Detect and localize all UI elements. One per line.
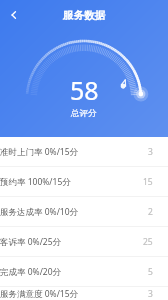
- button[interactable]: 服务满意度 0%/15分: [0, 287, 168, 300]
- staticText: 完成率 0%/20分: [0, 266, 148, 278]
- staticText: 客诉率 0%/25分: [0, 236, 143, 248]
- staticText: 3: [148, 288, 153, 300]
- staticText: 15: [143, 176, 153, 188]
- staticText: 预约率 100%/15分: [0, 176, 143, 188]
- staticText: 3: [148, 146, 153, 158]
- staticText: 服务达成率 0%/10分: [0, 206, 148, 218]
- button[interactable]: 准时上门率 0%/15分: [0, 137, 168, 166]
- button[interactable]: 预约率 100%/15分: [0, 167, 168, 196]
- staticText: 服务满意度 0%/15分: [0, 288, 148, 300]
- staticText: 58: [70, 73, 99, 107]
- staticText: 准时上门率 0%/15分: [0, 146, 148, 158]
- button[interactable]: 服务达成率 0%/10分: [0, 197, 168, 226]
- staticText: 总评分: [71, 108, 97, 119]
- button[interactable]: 完成率 0%/20分: [0, 257, 168, 286]
- staticText: 服务数据: [63, 9, 105, 22]
- staticText: 5: [148, 266, 153, 278]
- button[interactable]: Back: [3, 4, 25, 26]
- staticText: 25: [143, 236, 153, 248]
- button[interactable]: 客诉率 0%/25分: [0, 227, 168, 256]
- staticText: 2: [148, 206, 153, 218]
